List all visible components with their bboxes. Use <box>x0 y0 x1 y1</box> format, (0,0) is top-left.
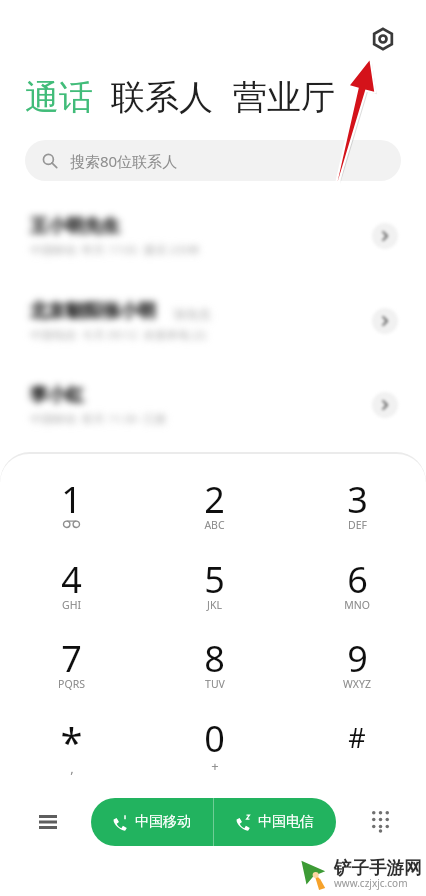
button[interactable]: 营业厅 <box>233 76 335 119</box>
staticText: JKL <box>207 598 222 612</box>
button[interactable]: 李小红 <box>0 364 426 449</box>
button[interactable]: Call history menu <box>28 802 68 842</box>
button[interactable]: 1 <box>11 460 131 539</box>
button[interactable]: Settings <box>369 25 397 53</box>
button[interactable]: 4 <box>11 540 131 619</box>
button[interactable]: 联系人 <box>111 76 213 119</box>
button[interactable]: 5 <box>154 540 274 619</box>
staticText: 9 <box>347 634 368 683</box>
staticText: 营业厅 <box>233 76 335 119</box>
staticText: 1 <box>61 475 82 524</box>
staticText: PQRS <box>58 677 85 691</box>
staticText: 7 <box>61 634 82 683</box>
staticText: 中国电信 <box>258 813 314 831</box>
staticText: 中国移动 <box>135 813 191 831</box>
staticText: * <box>60 714 83 768</box>
button[interactable]: 中国移动 <box>91 798 213 846</box>
button[interactable]: 6 <box>297 540 417 619</box>
button[interactable]: Contact details <box>372 308 398 334</box>
staticText: 0 <box>204 714 225 763</box>
button[interactable]: 搜索80位联系人 <box>25 140 401 181</box>
button[interactable]: 3 <box>297 460 417 539</box>
staticText: 6 <box>347 555 368 604</box>
button[interactable]: Contact details <box>372 392 398 418</box>
staticText: # <box>348 719 366 756</box>
button[interactable]: Keypad <box>360 802 400 842</box>
staticText: 北京朝阳张小明 <box>30 300 156 323</box>
staticText: 8 <box>204 634 225 683</box>
staticText: 铲子手游网 <box>334 857 422 879</box>
staticText: GHI <box>62 598 81 612</box>
staticText: 李小红 <box>30 384 84 407</box>
staticText: 王小明先生 <box>30 215 120 238</box>
staticText: 搜索80位联系人 <box>70 151 178 171</box>
staticText: www.czjxjc.com <box>334 876 408 890</box>
staticText: , <box>70 759 74 777</box>
button[interactable]: * <box>11 699 131 778</box>
button[interactable]: 通话 <box>25 76 93 119</box>
staticText: 联系人 <box>111 76 213 119</box>
staticText: 2 <box>204 475 225 524</box>
staticText: DEF <box>348 518 367 532</box>
staticText: TUV <box>205 677 225 691</box>
button[interactable]: 9 <box>297 619 417 698</box>
staticText: 5 <box>204 555 225 604</box>
staticText: WXYZ <box>343 677 371 691</box>
staticText: 中国移动 昨天 17:05 通话 2分钟 <box>30 242 199 258</box>
staticText: ABC <box>204 518 225 532</box>
staticText: 中国移动 前天 11:30 已接 <box>30 411 167 427</box>
staticText: + <box>211 757 219 775</box>
button[interactable]: 8 <box>154 619 274 698</box>
staticText: 3 <box>347 475 368 524</box>
staticText: 4 <box>61 555 82 604</box>
staticText: 张先生 <box>156 305 212 323</box>
button[interactable]: 中国电信 <box>214 798 336 846</box>
button[interactable]: 0 <box>154 699 274 778</box>
staticText: 通话 <box>25 76 93 119</box>
button[interactable]: 7 <box>11 619 131 698</box>
button[interactable]: Contact details <box>372 223 398 249</box>
button[interactable]: # <box>297 699 417 778</box>
button[interactable]: 王小明先生 <box>0 195 426 280</box>
staticText: MNO <box>344 598 370 612</box>
button[interactable]: 2 <box>154 460 274 539</box>
button[interactable]: 北京朝阳张小明 <box>0 280 426 365</box>
staticText: 中国电信 今天 09:12 未接来电 (2) <box>30 327 206 343</box>
